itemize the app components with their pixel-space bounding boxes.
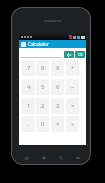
staticText: 7 — [27, 64, 31, 72]
button[interactable]: Backspace — [64, 51, 74, 58]
staticText: 2 — [41, 102, 45, 110]
staticText: 6 — [56, 83, 60, 91]
button[interactable]: 4 — [22, 79, 35, 95]
button[interactable]: Calculator — [19, 40, 86, 48]
button[interactable]: × — [66, 98, 79, 114]
button[interactable]: Back — [19, 153, 35, 162]
button[interactable]: 5 — [36, 79, 49, 95]
staticText: 4 — [27, 83, 31, 91]
button[interactable]: – — [66, 79, 79, 95]
button[interactable]: 0 — [36, 116, 49, 132]
staticText: 0 — [41, 120, 45, 128]
button[interactable]: 6 — [51, 79, 64, 95]
staticText: 9 — [56, 64, 60, 72]
button[interactable]: Recent apps — [69, 153, 86, 162]
staticText: = — [56, 120, 60, 128]
button[interactable]: 3 — [51, 98, 64, 114]
staticText: – — [71, 83, 75, 91]
staticText: × — [71, 102, 75, 110]
button[interactable]: ÷ — [66, 116, 79, 132]
staticText: . — [28, 120, 30, 128]
button[interactable]: + — [66, 60, 79, 76]
button[interactable]: = — [51, 116, 64, 132]
button[interactable]: 2 — [36, 98, 49, 114]
button[interactable]: Home — [35, 153, 52, 162]
button[interactable]: CE — [75, 51, 85, 58]
staticText: ÷ — [71, 120, 75, 128]
button[interactable]: 8 — [36, 60, 49, 76]
staticText: 1 — [27, 102, 31, 110]
staticText: 5 — [41, 83, 45, 91]
button[interactable]: Search — [52, 153, 69, 162]
staticText: Calculator — [28, 41, 49, 47]
staticText: CE — [78, 52, 83, 57]
button[interactable]: 9 — [51, 60, 64, 76]
staticText: 8 — [41, 64, 45, 72]
button[interactable]: 7 — [22, 60, 35, 76]
staticText: + — [71, 64, 75, 72]
staticText: 3 — [56, 102, 60, 110]
button[interactable]: 1 — [22, 98, 35, 114]
